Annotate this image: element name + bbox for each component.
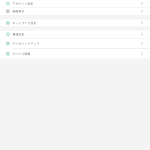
button[interactable]: 画面表示 [0, 7, 150, 15]
staticText: デバイス情報 [12, 52, 30, 55]
button[interactable]: デバイス情報 [0, 49, 150, 58]
staticText: 通知設定 [12, 33, 24, 36]
staticText: ネットワーク設定 [12, 21, 36, 25]
button[interactable]: 通知設定 [0, 30, 150, 38]
button[interactable]: ネットワーク設定 [0, 19, 150, 26]
button[interactable]: アカウント設定 [0, 0, 150, 7]
button[interactable]: データバックアップ [0, 38, 150, 48]
staticText: 画面表示 [12, 10, 24, 13]
staticText: アカウント設定 [12, 2, 33, 5]
staticText: データバックアップ [12, 42, 39, 45]
